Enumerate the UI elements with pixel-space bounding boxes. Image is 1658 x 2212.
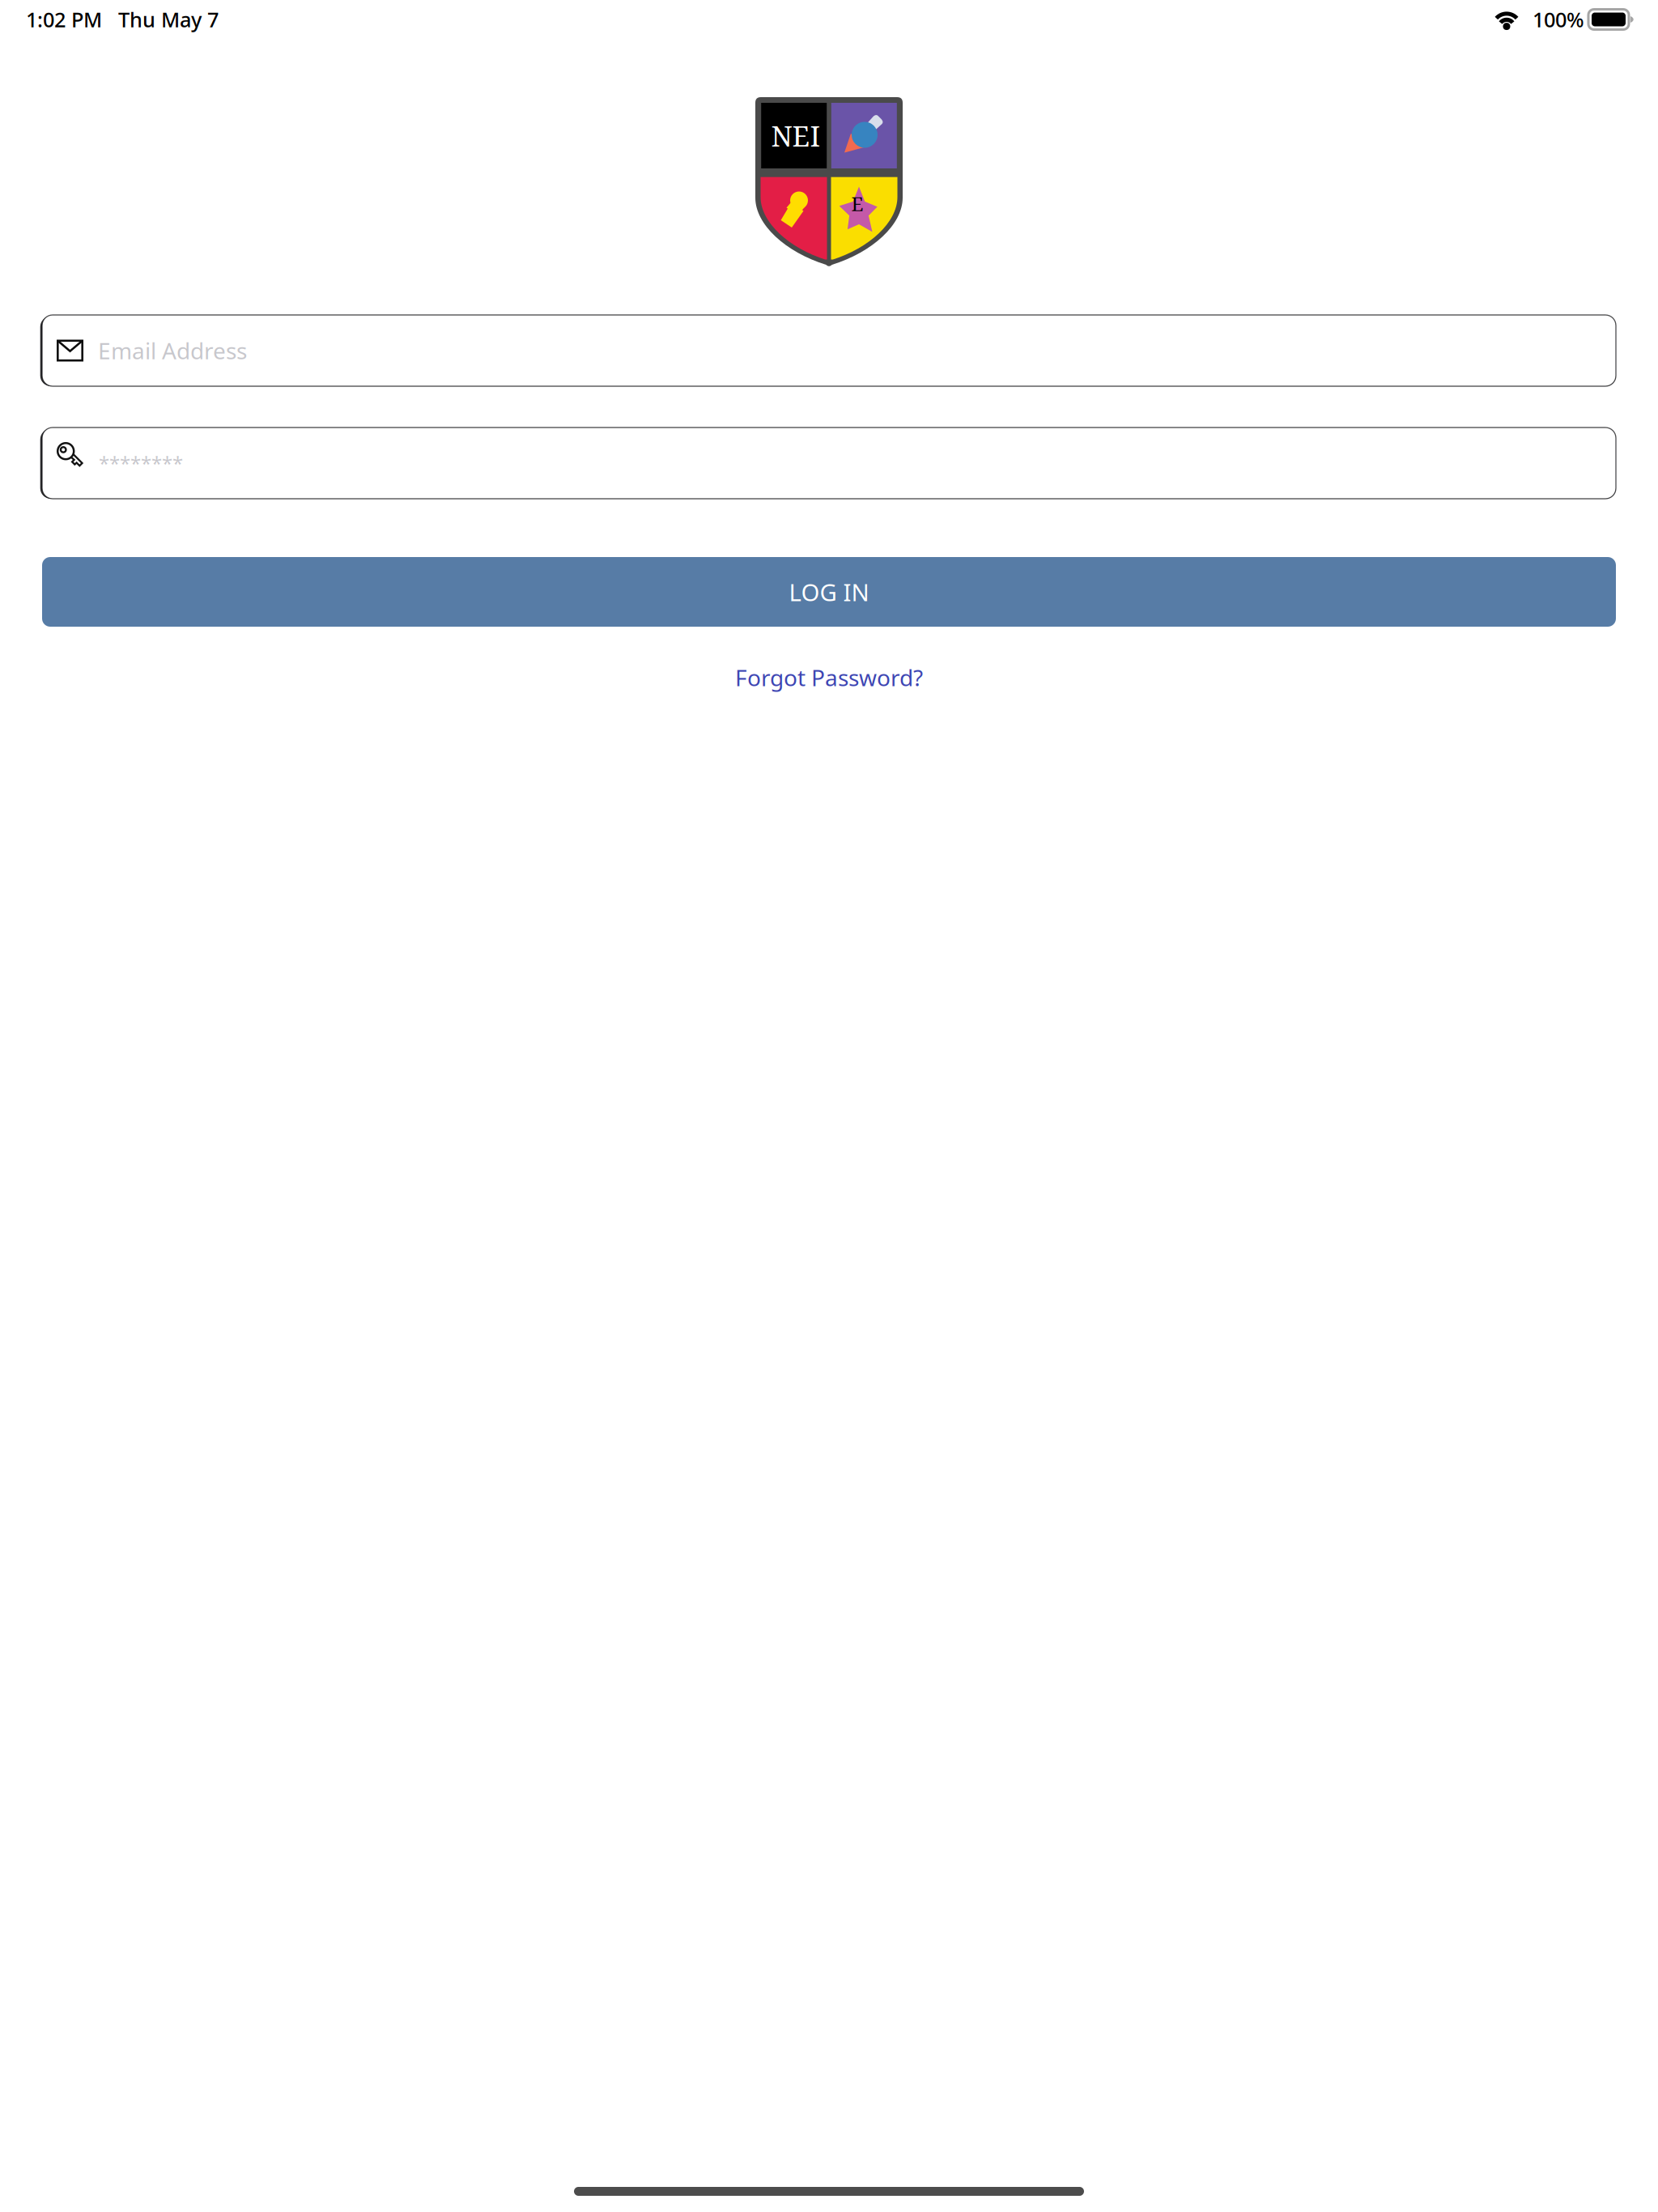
staticText: Email Address xyxy=(98,336,247,366)
staticText: LOG IN xyxy=(789,576,869,608)
button[interactable]: ******** xyxy=(42,428,1616,499)
staticText: 1:02 PM xyxy=(26,6,102,33)
button[interactable]: Email Address xyxy=(42,315,1616,386)
staticText: Forgot Password? xyxy=(735,662,923,692)
staticText: 100% xyxy=(1533,6,1584,33)
staticText: Thu May 7 xyxy=(118,6,219,33)
staticText: E xyxy=(851,190,863,217)
staticText: ******** xyxy=(99,450,183,476)
button[interactable]: LOG IN xyxy=(42,557,1616,627)
staticText: NEI xyxy=(771,117,820,155)
button[interactable]: Forgot Password? xyxy=(735,662,923,692)
